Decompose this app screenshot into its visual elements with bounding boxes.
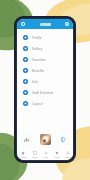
button[interactable]: Add bbox=[40, 149, 51, 160]
button[interactable]: Logout bbox=[17, 98, 73, 109]
staticText: Favorites bbox=[32, 58, 46, 62]
staticText: Gallery bbox=[32, 47, 43, 51]
staticText: Profile bbox=[32, 36, 42, 40]
button[interactable]: Staff Schedule bbox=[17, 87, 73, 98]
button[interactable]: Profile bbox=[17, 32, 73, 43]
button[interactable]: Benefits bbox=[17, 65, 73, 76]
button[interactable]: Alerts bbox=[51, 149, 62, 160]
staticText: Benefits bbox=[32, 69, 45, 73]
staticText: Info bbox=[32, 80, 39, 84]
button[interactable]: Explore bbox=[58, 134, 69, 145]
staticText: HOME bbox=[40, 22, 51, 27]
button[interactable]: More bbox=[62, 149, 73, 160]
button[interactable]: Profile bbox=[64, 21, 70, 27]
staticText: Logout bbox=[32, 102, 43, 106]
button[interactable]: Menu bbox=[20, 21, 26, 27]
staticText: Alerts bbox=[54, 156, 60, 159]
staticText: Home bbox=[20, 156, 27, 159]
staticText: More bbox=[65, 156, 71, 159]
staticText: Add bbox=[43, 156, 48, 159]
button[interactable]: Gallery bbox=[17, 43, 73, 54]
staticText: Tasks bbox=[32, 156, 38, 159]
button[interactable]: Featured photo bbox=[39, 133, 52, 146]
button[interactable]: Statistics bbox=[21, 134, 32, 145]
staticText: Staff Schedule bbox=[32, 91, 54, 95]
button[interactable]: Favorites bbox=[17, 54, 73, 65]
button[interactable]: Info bbox=[17, 76, 73, 87]
button[interactable]: Tasks bbox=[29, 149, 40, 160]
button[interactable]: Home bbox=[17, 149, 29, 160]
